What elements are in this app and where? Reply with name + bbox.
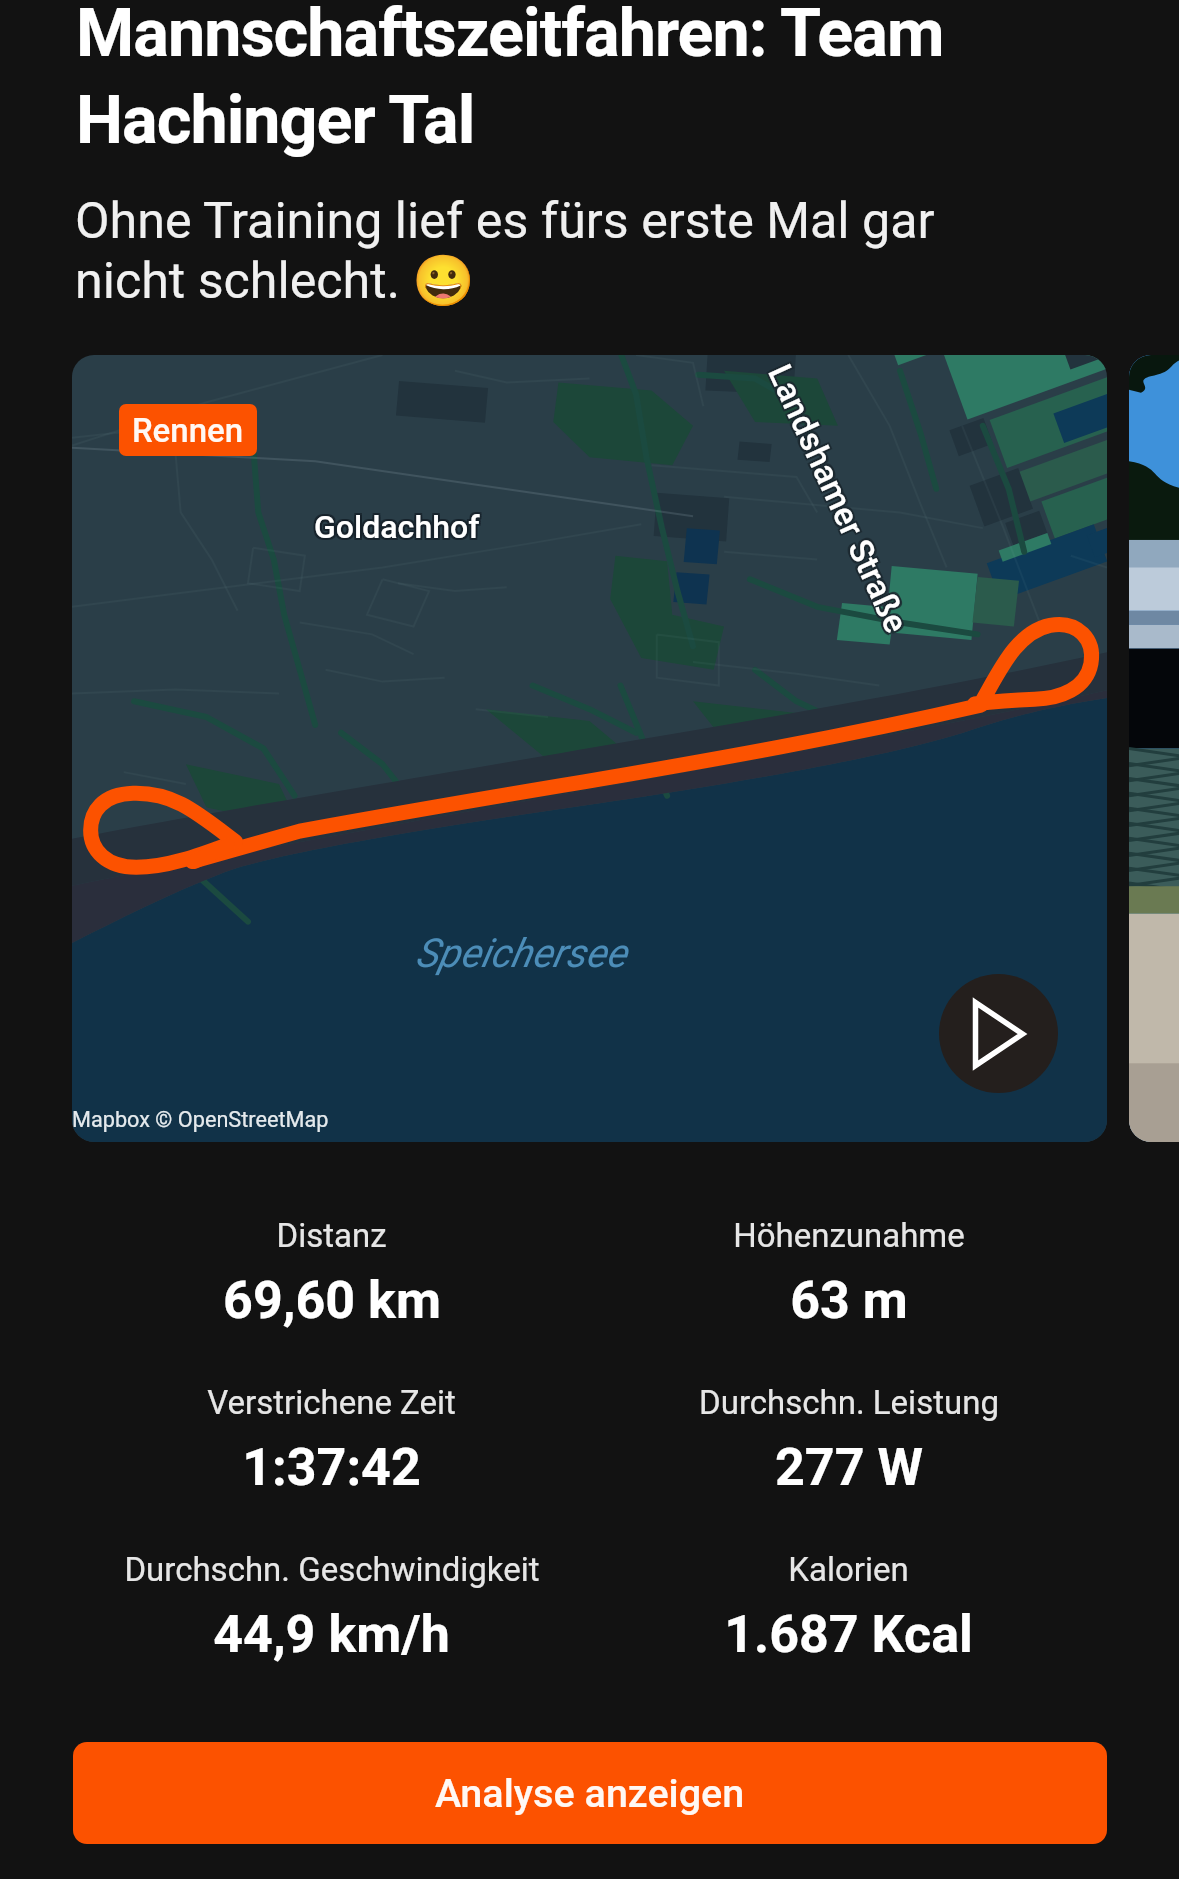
- staticText: Goldachhof: [312, 510, 478, 548]
- staticText: Durchschn. Geschwindigkeit: [124, 1550, 540, 1589]
- staticText: 1.687 Kcal: [724, 1604, 973, 1665]
- staticText: Analyse anzeigen: [435, 1770, 745, 1816]
- staticText: Landshamer Straße: [758, 357, 914, 638]
- staticText: Goldachhof: [316, 508, 482, 546]
- staticText: Landshamer Straße: [761, 356, 917, 637]
- staticText: 63 m: [790, 1270, 908, 1331]
- staticText: Landshamer Straße: [760, 358, 916, 639]
- staticText: Höhenzunahme: [733, 1216, 965, 1255]
- staticText: Durchschn. Leistung: [699, 1383, 999, 1422]
- staticText: Goldachhof: [316, 510, 482, 548]
- button[interactable]: Rennen: [119, 404, 257, 456]
- staticText: Goldachhof: [314, 510, 480, 548]
- staticText: Goldachhof: [316, 506, 482, 544]
- staticText: Landshamer Straße: [763, 359, 919, 640]
- staticText: Mannschaftszeitfahren: Team Hachinger Ta…: [76, 0, 986, 159]
- staticText: Verstrichene Zeit: [207, 1383, 456, 1422]
- staticText: Landshamer Straße: [762, 358, 918, 639]
- button[interactable]: [1129, 355, 1179, 1142]
- staticText: Ohne Training lief es fürs erste Mal gar…: [75, 191, 987, 310]
- staticText: 44,9 km/h: [213, 1604, 450, 1665]
- staticText: Goldachhof: [314, 508, 480, 546]
- staticText: Kalorien: [788, 1550, 909, 1589]
- staticText: Goldachhof: [314, 506, 480, 544]
- staticText: Goldachhof: [312, 508, 478, 546]
- staticText: Landshamer Straße: [758, 359, 915, 640]
- button[interactable]: Play animation: [939, 974, 1058, 1093]
- staticText: Speichersee: [415, 930, 627, 977]
- staticText: Goldachhof: [312, 506, 478, 544]
- button[interactable]: Analyse anzeigen: [73, 1742, 1107, 1844]
- staticText: 69,60 km: [223, 1270, 441, 1331]
- staticText: Landshamer Straße: [759, 357, 916, 638]
- staticText: Landshamer Straße: [759, 361, 915, 642]
- staticText: Rennen: [132, 411, 244, 450]
- staticText: Landshamer Straße: [761, 360, 917, 641]
- staticText: Distanz: [276, 1216, 387, 1255]
- button[interactable]: Landshamer Straße: [72, 355, 1107, 1142]
- staticText: Mapbox © OpenStreetMap: [72, 1107, 329, 1132]
- staticText: 1:37:42: [242, 1437, 421, 1498]
- staticText: 277 W: [775, 1437, 923, 1498]
